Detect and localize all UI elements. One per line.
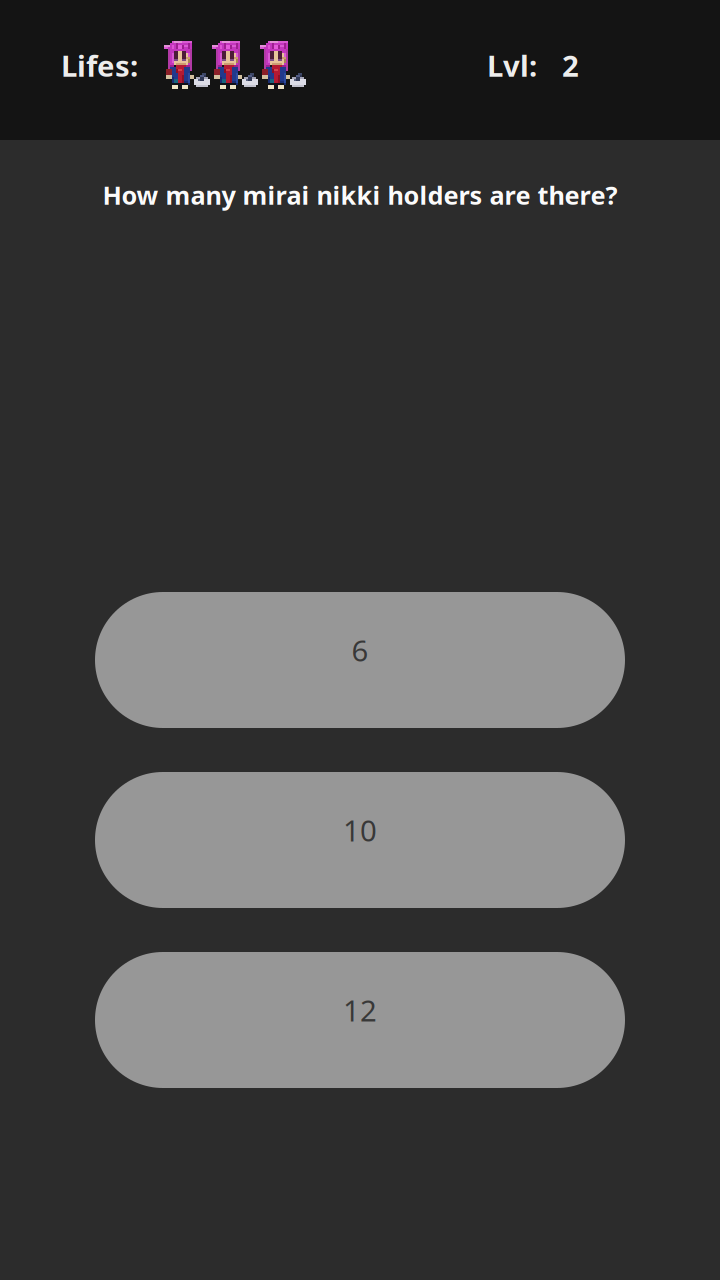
staticText: Lvl: xyxy=(487,46,537,85)
staticText: 10 xyxy=(343,810,377,849)
button[interactable]: 10 xyxy=(95,772,625,908)
button[interactable]: 6 xyxy=(95,592,625,728)
staticText: 12 xyxy=(343,990,377,1029)
button[interactable]: 12 xyxy=(95,952,625,1088)
staticText: 6 xyxy=(351,630,368,669)
staticText: Lifes: xyxy=(61,46,138,85)
staticText: 2 xyxy=(562,46,579,85)
group: 3 lives remaining xyxy=(164,41,306,89)
staticText: How many mirai nikki holders are there? xyxy=(102,178,617,212)
